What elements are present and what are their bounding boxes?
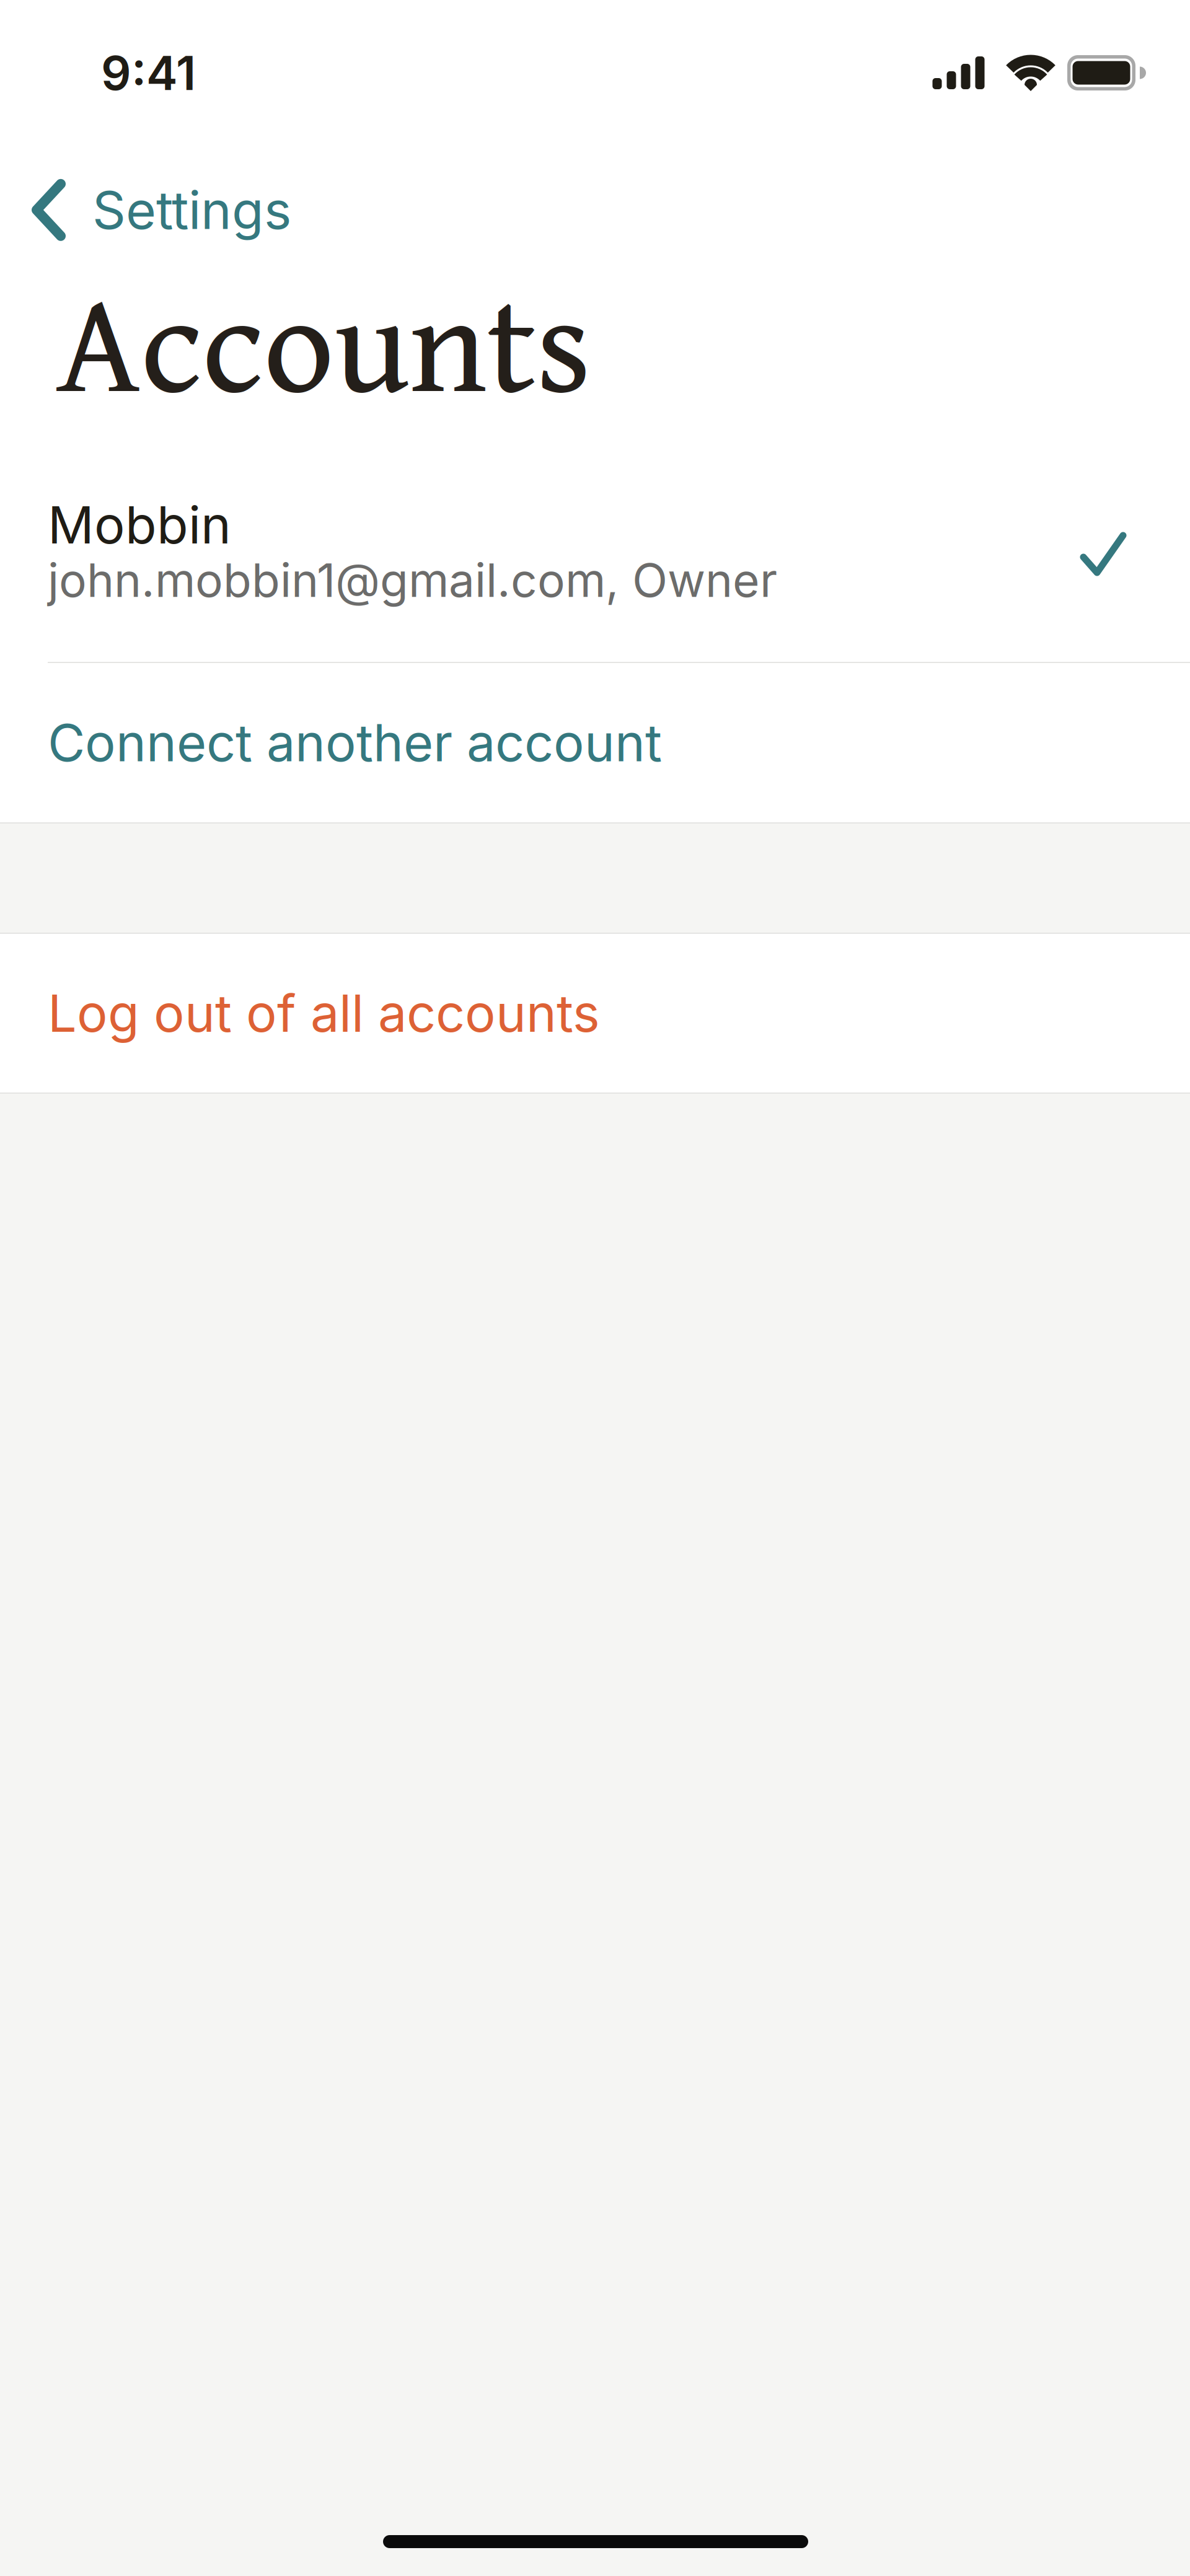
staticText: Settings: [92, 178, 291, 241]
staticText: 9:41: [101, 44, 196, 101]
button[interactable]: Log out of all accounts: [0, 934, 1190, 1092]
staticText: john.mobbin1@gmail.com, Owner: [48, 552, 777, 608]
button[interactable]: Settings: [0, 167, 310, 253]
staticText: Accounts: [56, 239, 591, 442]
staticText: Log out of all accounts: [48, 982, 600, 1044]
staticText: Connect another account: [48, 712, 662, 774]
button[interactable]: Mobbin: [0, 482, 1190, 662]
staticText: Mobbin: [48, 494, 231, 556]
button[interactable]: Connect another account: [0, 663, 1190, 822]
